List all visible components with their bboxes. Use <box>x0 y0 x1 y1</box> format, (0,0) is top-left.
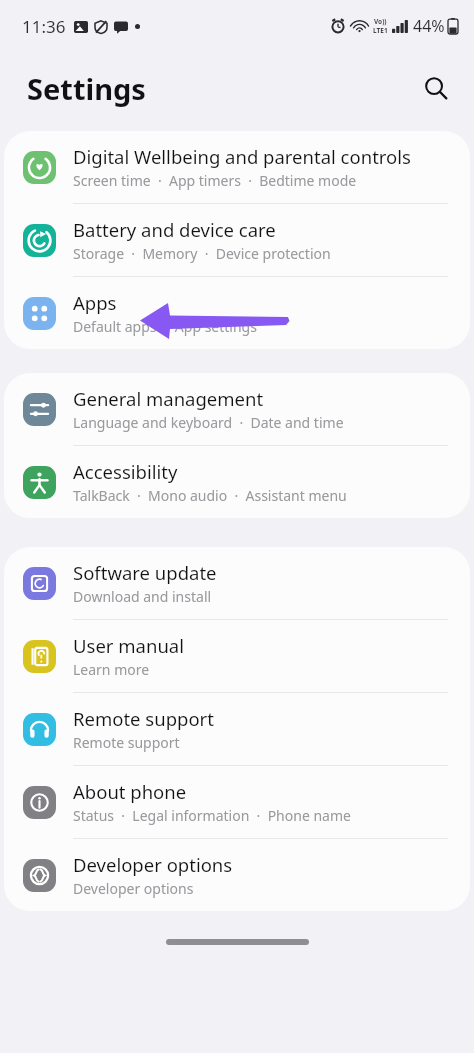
staticText: Vo)) <box>374 17 387 26</box>
staticText: About phone <box>73 779 187 804</box>
staticText: TalkBack · Mono audio · Assistant menu <box>73 486 347 505</box>
staticText: User manual <box>73 633 184 658</box>
button[interactable]: Developer options <box>4 839 470 911</box>
staticText: General management <box>73 386 264 411</box>
staticText: LTE1 <box>373 26 388 35</box>
staticText: Learn more <box>73 660 150 679</box>
staticText: 11:36 <box>22 15 66 38</box>
staticText: Battery and device care <box>73 217 276 242</box>
button[interactable]: Remote support <box>4 693 470 765</box>
button[interactable]: About phone <box>4 766 470 838</box>
staticText: Screen time · App timers · Bedtime mode <box>73 171 357 190</box>
button[interactable]: Apps <box>4 277 470 349</box>
button[interactable]: Accessibility <box>4 446 470 518</box>
staticText: Settings <box>27 69 146 108</box>
staticText: Apps <box>73 290 117 315</box>
button[interactable]: Search <box>412 64 460 112</box>
button[interactable]: General management <box>4 373 470 445</box>
button[interactable]: Software update <box>4 547 470 619</box>
button[interactable]: User manual <box>4 620 470 692</box>
staticText: Language and keyboard · Date and time <box>73 413 344 432</box>
staticText: Status · Legal information · Phone name <box>73 806 351 825</box>
button[interactable]: Battery and device care <box>4 204 470 276</box>
staticText: Default apps · App settings <box>73 317 257 336</box>
staticText: Software update <box>73 560 217 585</box>
staticText: Digital Wellbeing and parental controls <box>73 144 411 169</box>
staticText: Accessibility <box>73 459 178 484</box>
staticText: Developer options <box>73 879 194 898</box>
staticText: Developer options <box>73 852 233 877</box>
staticText: Storage · Memory · Device protection <box>73 244 331 263</box>
staticText: 44% <box>413 15 445 37</box>
button[interactable]: Digital Wellbeing and parental controls <box>4 131 470 203</box>
staticText: Remote support <box>73 733 180 752</box>
staticText: Remote support <box>73 706 214 731</box>
staticText: Download and install <box>73 587 212 606</box>
